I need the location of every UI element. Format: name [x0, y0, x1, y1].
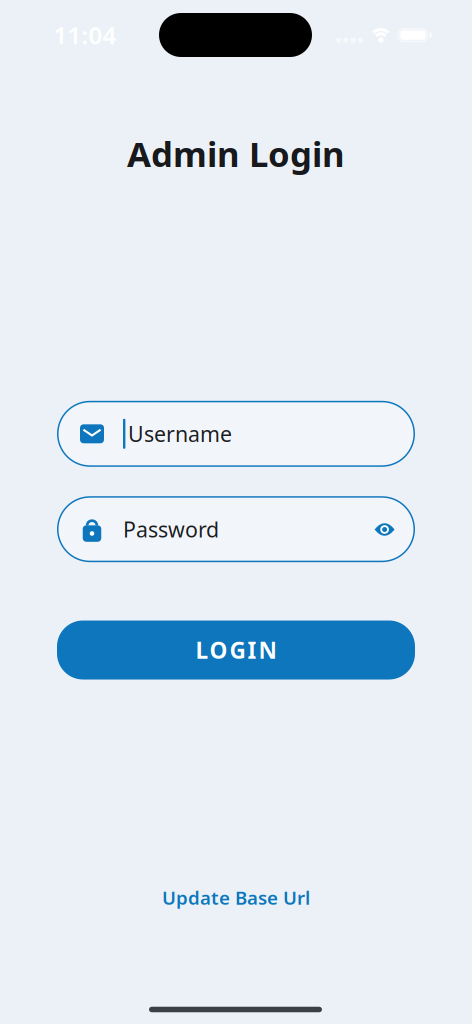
button[interactable]: Password [57, 496, 415, 562]
staticText: Username [128, 420, 232, 448]
button[interactable]: Username [57, 401, 415, 467]
staticText: Update Base Url [162, 885, 310, 910]
staticText: 11:04 [53, 19, 116, 51]
staticText: Password [123, 515, 219, 543]
staticText: LOGIN [195, 635, 276, 665]
staticText: Admin Login [127, 130, 345, 176]
button[interactable] [367, 511, 403, 547]
button[interactable]: LOGIN [57, 620, 415, 679]
button[interactable]: Update Base Url [162, 885, 310, 910]
